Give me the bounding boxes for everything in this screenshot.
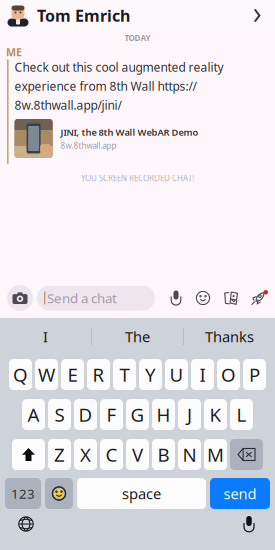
button[interactable]: Dictation xyxy=(228,510,270,538)
staticText: U xyxy=(169,362,183,387)
button[interactable]: Z xyxy=(48,439,71,470)
staticText: G xyxy=(130,402,144,427)
staticText: J xyxy=(187,402,192,427)
button[interactable]: A xyxy=(22,399,45,430)
button[interactable]: R xyxy=(87,359,110,390)
staticText: Tom Emrich xyxy=(37,5,130,26)
button[interactable]: Tom Emrich xyxy=(0,4,130,26)
staticText: F xyxy=(106,402,116,427)
staticText: O xyxy=(221,362,236,387)
button[interactable]: Delete xyxy=(230,439,263,470)
button[interactable]: S xyxy=(48,399,71,430)
button[interactable]: F xyxy=(100,399,123,430)
staticText: 8w.8thwall.app xyxy=(61,140,117,151)
button[interactable]: Shift xyxy=(12,439,45,470)
staticText: V xyxy=(132,442,143,467)
button[interactable]: H xyxy=(152,399,175,430)
button[interactable]: Y xyxy=(139,359,162,390)
button[interactable]: B xyxy=(152,439,175,470)
button[interactable]: J xyxy=(178,399,201,430)
button[interactable]: Stickers xyxy=(217,284,245,312)
staticText: I xyxy=(199,362,205,387)
staticText: Q xyxy=(13,362,28,387)
button[interactable]: Send a chat xyxy=(37,285,155,310)
button[interactable]: V xyxy=(126,439,149,470)
staticText: Send a chat xyxy=(47,289,117,307)
staticText: JINI, the 8th Wall WebAR Demo xyxy=(61,126,199,138)
button[interactable]: Emoji keyboard xyxy=(45,478,73,509)
staticText: YOU SCREEN RECORDED CHAT! xyxy=(81,173,194,183)
button[interactable]: I xyxy=(191,359,214,390)
staticText: T xyxy=(119,362,129,387)
button[interactable]: D xyxy=(74,399,97,430)
staticText: Check out this cool augmented reality ex… xyxy=(15,59,224,113)
button[interactable]: W xyxy=(35,359,58,390)
staticText: B xyxy=(157,442,169,467)
staticText: N xyxy=(182,442,196,467)
button[interactable]: N xyxy=(178,439,201,470)
staticText: A xyxy=(27,402,39,427)
button[interactable]: I xyxy=(0,318,91,355)
button[interactable]: U xyxy=(165,359,188,390)
button[interactable]: send xyxy=(210,478,270,509)
staticText: P xyxy=(249,362,260,387)
button[interactable]: Thanks xyxy=(184,318,275,355)
staticText: K xyxy=(209,402,221,427)
staticText: C xyxy=(105,442,117,467)
button[interactable]: Emoji xyxy=(189,284,217,312)
button[interactable]: G xyxy=(126,399,149,430)
staticText: ME xyxy=(6,45,22,59)
staticText: Z xyxy=(54,442,65,467)
staticText: TODAY xyxy=(124,33,150,43)
button[interactable]: X xyxy=(74,439,97,470)
button[interactable]: Voice note xyxy=(163,284,189,312)
button[interactable]: Camera xyxy=(3,283,37,313)
staticText: S xyxy=(54,402,64,427)
staticText: H xyxy=(156,402,170,427)
button[interactable]: L xyxy=(230,399,253,430)
button[interactable]: P xyxy=(243,359,266,390)
staticText: E xyxy=(67,362,77,387)
button[interactable]: space xyxy=(77,478,206,509)
staticText: send xyxy=(223,484,256,503)
staticText: I xyxy=(43,327,48,346)
staticText: D xyxy=(78,402,92,427)
staticText: space xyxy=(122,484,161,503)
button[interactable]: Next keyboard xyxy=(5,510,47,538)
button[interactable]: M xyxy=(204,439,227,470)
button[interactable]: O xyxy=(217,359,240,390)
staticText: M xyxy=(207,442,224,467)
button[interactable]: C xyxy=(100,439,123,470)
button[interactable]: Q xyxy=(9,359,32,390)
button[interactable]: K xyxy=(204,399,227,430)
button[interactable]: T xyxy=(113,359,136,390)
staticText: R xyxy=(92,362,104,387)
staticText: X xyxy=(80,442,91,467)
staticText: Y xyxy=(145,362,156,387)
button[interactable]: E xyxy=(61,359,84,390)
button[interactable]: 123 xyxy=(5,478,41,509)
staticText: W xyxy=(38,362,55,387)
staticText: 123 xyxy=(11,485,35,502)
button[interactable]: The xyxy=(92,318,183,355)
button[interactable]: Rockets xyxy=(245,284,271,312)
staticText: Thanks xyxy=(205,327,254,346)
staticText: The xyxy=(125,327,150,346)
staticText: L xyxy=(236,402,246,427)
button[interactable]: Conversation settings xyxy=(244,1,270,29)
